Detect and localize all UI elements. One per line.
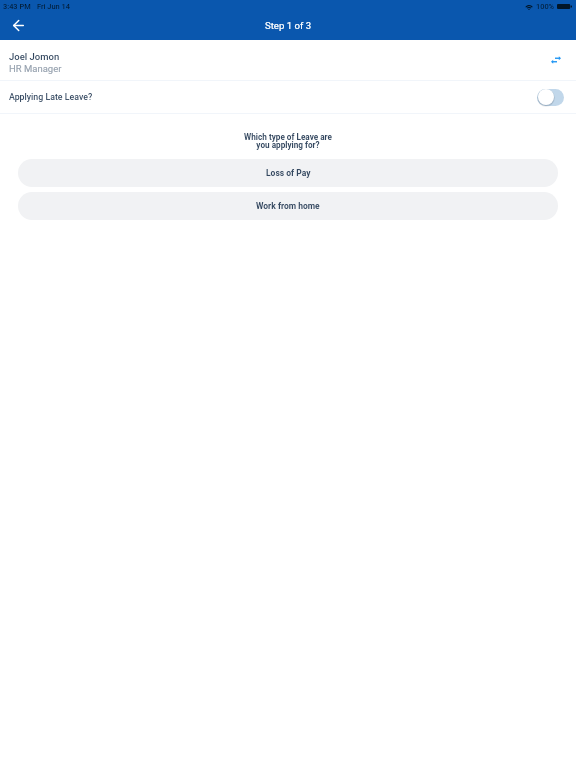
button[interactable]: Applying Late Leave toggle [537,88,564,106]
staticText: Fri Jun 14 [37,2,70,11]
staticText: 3:43 PM [3,2,31,11]
staticText: Work from home [256,201,320,211]
staticText: Joel Jomon [9,51,60,62]
button[interactable]: Back [6,13,31,38]
staticText: Applying Late Leave? [9,92,93,102]
staticText: Loss of Pay [266,168,311,178]
staticText: Step 1 of 3 [265,20,312,31]
staticText: Which type of Leave are you applying for… [0,132,576,150]
button[interactable]: Loss of Pay [18,159,558,187]
staticText: 100% [536,2,555,11]
button[interactable]: Work from home [18,192,558,220]
staticText: HR Manager [9,63,62,74]
button[interactable]: Switch employee [545,49,567,71]
